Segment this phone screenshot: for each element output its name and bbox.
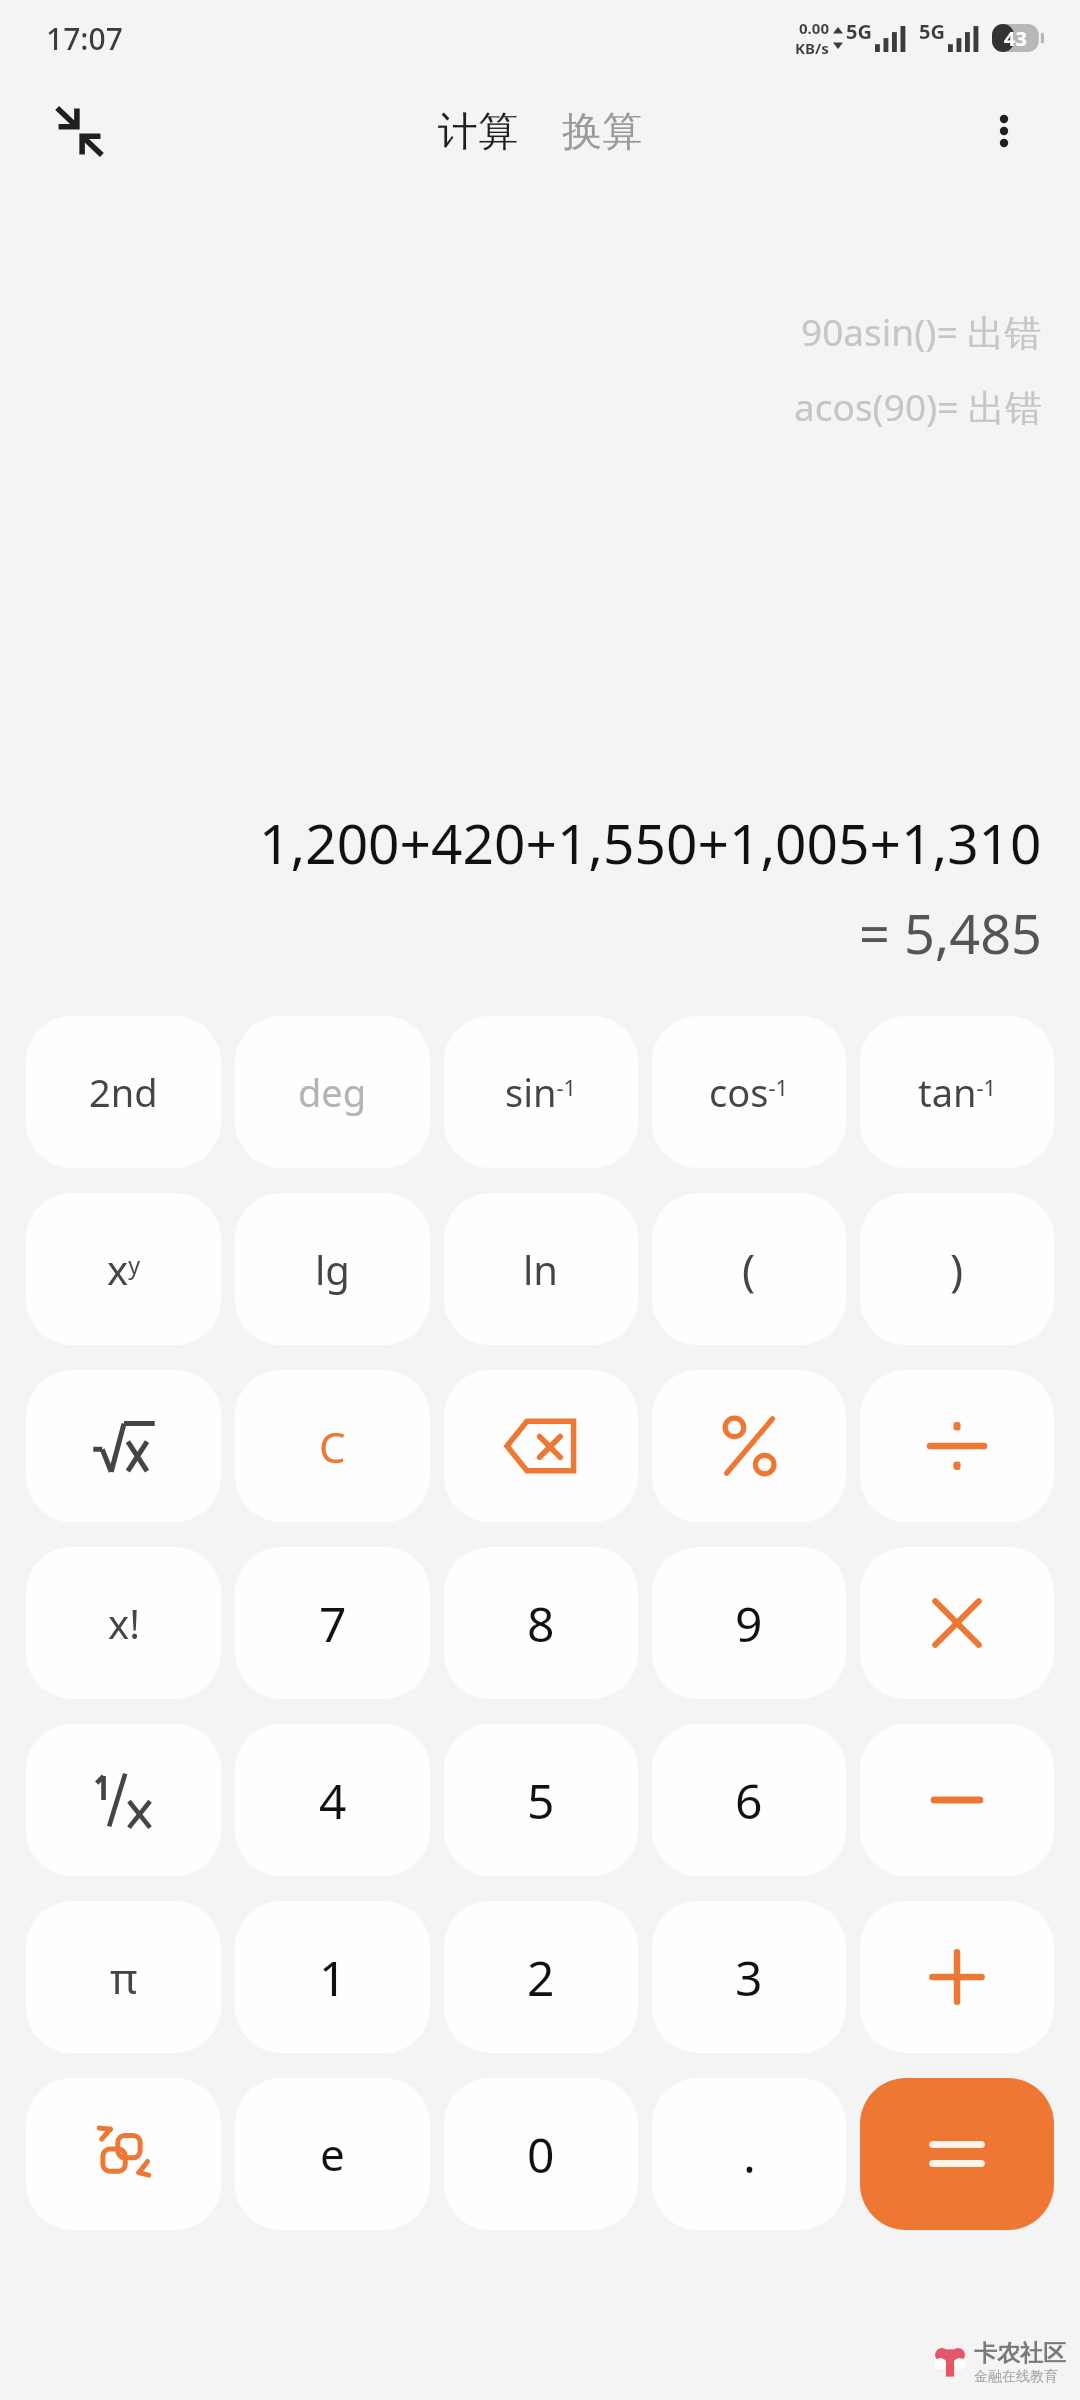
staticText: 5G [919, 18, 945, 45]
staticText: 2nd [89, 1066, 158, 1118]
button[interactable]: 90asin()= 出错 [801, 306, 1042, 357]
button[interactable]: Square root [26, 1370, 221, 1522]
button[interactable]: C [235, 1370, 430, 1522]
button[interactable]: Plus [860, 1901, 1054, 2053]
button[interactable]: Percent [652, 1370, 846, 1522]
button[interactable]: deg [235, 1016, 430, 1168]
staticText: 3 [735, 1945, 763, 2010]
staticText: 0 [527, 2122, 555, 2187]
button[interactable]: 7 [235, 1547, 430, 1699]
button[interactable]: ln [444, 1193, 638, 1345]
staticText: xy [107, 1242, 140, 1296]
button[interactable]: cos-1 [652, 1016, 846, 1168]
button[interactable]: π [26, 1901, 221, 2053]
button[interactable]: tan-1 [860, 1016, 1054, 1168]
button[interactable]: 4 [235, 1724, 430, 1876]
staticText: 金融在线教育 [974, 2368, 1058, 2386]
button[interactable]: xy [26, 1193, 221, 1345]
button[interactable]: 2nd [26, 1016, 221, 1168]
staticText: x! [108, 1596, 140, 1650]
staticText: ( [742, 1239, 756, 1299]
staticText: π [110, 1949, 138, 2006]
button[interactable]: Multiply [860, 1547, 1054, 1699]
button[interactable]: 换算 [552, 98, 652, 164]
staticText: 5 [527, 1768, 555, 1833]
staticText: 6 [735, 1768, 763, 1833]
button[interactable]: One over x [26, 1724, 221, 1876]
button[interactable]: 9 [652, 1547, 846, 1699]
staticText: 7 [319, 1591, 347, 1656]
staticText: 4 [319, 1768, 347, 1833]
staticText: 5G [846, 18, 872, 45]
button[interactable]: lg [235, 1193, 430, 1345]
staticText: 换算 [562, 106, 642, 156]
staticText: tan-1 [918, 1066, 997, 1118]
staticText: . [743, 2122, 756, 2187]
button[interactable]: Backspace [444, 1370, 638, 1522]
staticText: 17:07 [46, 18, 123, 59]
staticText: 43 [1004, 25, 1027, 52]
button[interactable]: sin-1 [444, 1016, 638, 1168]
button[interactable]: 1 [235, 1901, 430, 2053]
button[interactable]: 3 [652, 1901, 846, 2053]
staticText: C [319, 1418, 346, 1475]
staticText: ) [950, 1239, 964, 1299]
staticText: e [320, 2124, 345, 2184]
staticText: ln [523, 1242, 559, 1296]
button[interactable]: Collapse [40, 92, 118, 170]
button[interactable]: e [235, 2078, 430, 2230]
staticText: sin-1 [505, 1066, 577, 1118]
staticText: 8 [527, 1591, 555, 1656]
button[interactable]: . [652, 2078, 846, 2230]
button[interactable]: 2 [444, 1901, 638, 2053]
staticText: 卡农社区 [974, 2339, 1066, 2368]
staticText: 计算 [438, 106, 518, 156]
button[interactable]: x! [26, 1547, 221, 1699]
staticText: deg [298, 1066, 367, 1118]
button[interactable]: 计算 [428, 98, 528, 164]
button[interactable]: Divide [860, 1370, 1054, 1522]
staticText: lg [315, 1242, 350, 1296]
staticText: acos(90)= 出错 [794, 381, 1042, 432]
staticText: = 5,485 [859, 896, 1042, 970]
button[interactable]: 8 [444, 1547, 638, 1699]
button[interactable]: Minus [860, 1724, 1054, 1876]
staticText: 2 [527, 1945, 555, 2010]
staticText: 1,200+420+1,550+1,005+1,310 [259, 805, 1042, 880]
staticText: KB/s [795, 38, 829, 58]
staticText: 90asin()= 出错 [801, 306, 1042, 357]
button[interactable]: ( [652, 1193, 846, 1345]
button[interactable]: ) [860, 1193, 1054, 1345]
staticText: 9 [735, 1591, 763, 1656]
button[interactable]: acos(90)= 出错 [794, 381, 1042, 432]
staticText: 1 [319, 1945, 347, 2010]
button[interactable]: 6 [652, 1724, 846, 1876]
staticText: 0.00 [799, 18, 829, 38]
button[interactable]: Unit convert [26, 2078, 221, 2230]
button[interactable]: 0 [444, 2078, 638, 2230]
button[interactable]: 5 [444, 1724, 638, 1876]
staticText: cos-1 [709, 1066, 789, 1118]
button[interactable]: More options [968, 95, 1040, 167]
button[interactable]: Equals [860, 2078, 1054, 2230]
